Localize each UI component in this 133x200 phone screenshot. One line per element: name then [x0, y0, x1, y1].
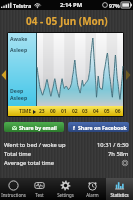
staticText: 04 — [93, 108, 99, 115]
button[interactable]: f — [68, 122, 129, 132]
staticText: Settings — [57, 192, 74, 198]
staticText: Asleep — [10, 94, 28, 101]
staticText: Telstra — [13, 2, 32, 9]
staticText: 23 — [39, 108, 45, 115]
button[interactable]: Instructions — [0, 178, 26, 200]
staticText: Alarm — [86, 192, 99, 198]
staticText: 06 — [115, 108, 121, 115]
button[interactable]: Next night — [124, 32, 133, 117]
staticText: Total time — [4, 150, 31, 158]
staticText: 00 — [50, 108, 56, 115]
staticText: Statistics — [110, 192, 129, 198]
staticText: Went to bed / woke up — [4, 141, 66, 149]
button[interactable]: Settings — [52, 178, 79, 200]
staticText: Test — [35, 192, 44, 198]
staticText: 2:14 PM — [60, 1, 83, 9]
staticText: Share on Facebook — [78, 124, 127, 131]
button[interactable]: Previous night — [0, 32, 7, 117]
staticText: Average total time — [4, 159, 55, 167]
staticText: 97% — [109, 2, 120, 9]
staticText: 04 - 05 Jun (Mon) — [26, 14, 108, 28]
staticText: 10:31 / 6:30 — [97, 141, 129, 149]
staticText: 03 — [82, 108, 88, 115]
staticText: 05 — [104, 108, 110, 115]
staticText: Deep — [10, 87, 24, 94]
staticText: Instructions — [1, 192, 26, 198]
button[interactable]: Share by email — [4, 122, 64, 132]
staticText: 7h 58m — [108, 150, 129, 158]
button[interactable]: Statistics — [106, 178, 133, 200]
staticText: TIME — [19, 108, 32, 115]
staticText: f — [73, 125, 75, 130]
staticText: 01 — [61, 108, 67, 115]
staticText: Awake — [10, 35, 28, 42]
staticText: 02 — [72, 108, 78, 115]
button[interactable]: Test — [26, 178, 52, 200]
staticText: Share by email — [19, 124, 57, 131]
button[interactable]: Alarm — [79, 178, 106, 200]
staticText: Asleep — [10, 46, 28, 53]
